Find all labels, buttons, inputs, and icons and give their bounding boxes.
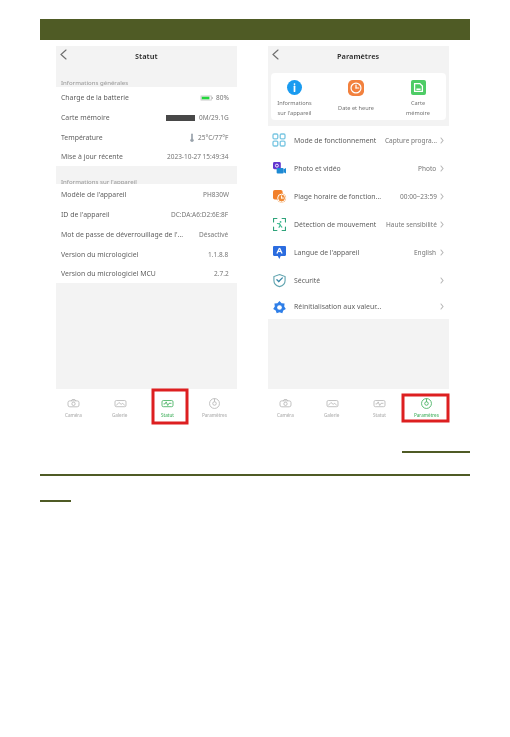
staticText: Informations sur l'appareil xyxy=(61,177,137,185)
button[interactable]: Paramètres xyxy=(405,389,447,423)
button[interactable]: Réinitialisation aux valeur... xyxy=(268,294,449,319)
button[interactable]: Galerie xyxy=(311,389,353,423)
button[interactable]: Version du micrologiciel xyxy=(56,244,237,264)
staticText: English xyxy=(414,248,437,257)
staticText: Détection de mouvement xyxy=(294,220,377,229)
button[interactable]: Modèle de l'appareil xyxy=(56,184,237,204)
staticText: ID de l'appareil xyxy=(61,210,110,219)
button[interactable]: Plage horaire de fonction... xyxy=(268,182,449,210)
button[interactable]: Caméra xyxy=(264,389,306,423)
button[interactable]: Carte mémoire xyxy=(390,73,446,120)
button[interactable]: Mot de passe de déverrouillage de l'... xyxy=(56,224,237,244)
button[interactable]: Statut xyxy=(146,389,188,423)
staticText: Mise à jour récente xyxy=(61,152,123,161)
staticText: Paramètres xyxy=(202,412,227,418)
staticText: Version du micrologiciel MCU xyxy=(61,269,156,278)
staticText: Photo xyxy=(418,164,437,173)
staticText: Langue de l'appareil xyxy=(294,248,360,257)
button[interactable]: Back xyxy=(56,47,70,61)
button[interactable]: Charge de la batterie xyxy=(56,87,237,107)
staticText: 2.7.2 xyxy=(214,269,229,278)
staticText: Caméra xyxy=(277,412,294,418)
button[interactable]: Détection de mouvement xyxy=(268,210,449,238)
staticText: Informations sur l'appareil xyxy=(277,99,312,116)
button[interactable]: ID de l'appareil xyxy=(56,204,237,224)
staticText: Désactivé xyxy=(199,230,229,239)
button[interactable]: Mise à jour récente xyxy=(56,147,237,166)
staticText: Statut xyxy=(373,412,386,418)
button[interactable]: Version du micrologiciel MCU xyxy=(56,264,237,283)
staticText: Galerie xyxy=(324,412,340,418)
staticText: Informations générales xyxy=(61,78,129,86)
staticText: Température xyxy=(61,133,103,142)
staticText: 0M/29.1G xyxy=(199,113,229,122)
staticText: Modèle de l'appareil xyxy=(61,190,127,199)
button[interactable]: Température xyxy=(56,127,237,147)
button[interactable]: Carte mémoire xyxy=(56,107,237,127)
button[interactable]: Mode de fonctionnement xyxy=(268,126,449,154)
staticText: Carte mémoire xyxy=(406,99,430,116)
staticText: 00:00~23:59 xyxy=(400,192,437,201)
button[interactable]: Informations sur l'appareil xyxy=(271,73,322,120)
staticText: 1.1.8.8 xyxy=(208,250,229,259)
staticText: Haute sensibilité xyxy=(386,220,437,229)
button[interactable]: Statut xyxy=(358,389,400,423)
staticText: Mode de fonctionnement xyxy=(294,136,377,145)
staticText: Statut xyxy=(161,412,174,418)
staticText: 25°C/77°F xyxy=(198,133,229,142)
button[interactable]: Back xyxy=(268,47,282,61)
staticText: Mot de passe de déverrouillage de l'... xyxy=(61,230,184,239)
button[interactable]: Sécurité xyxy=(268,266,449,294)
button[interactable]: Langue de l'appareil xyxy=(268,238,449,266)
staticText: Date et heure xyxy=(338,104,374,112)
staticText: Charge de la batterie xyxy=(61,93,129,102)
button[interactable]: Caméra xyxy=(52,389,94,423)
staticText: Carte mémoire xyxy=(61,113,110,122)
staticText: 80% xyxy=(216,93,229,102)
staticText: Galerie xyxy=(112,412,128,418)
staticText: DC:DA:A6:D2:6E:8F xyxy=(171,210,229,219)
staticText: Paramètres xyxy=(414,412,439,418)
button[interactable]: Photo et vidéo xyxy=(268,154,449,182)
staticText: Caméra xyxy=(65,412,82,418)
staticText: Paramètres xyxy=(337,51,380,61)
staticText: Réinitialisation aux valeur... xyxy=(294,302,382,311)
staticText: Plage horaire de fonction... xyxy=(294,192,382,201)
button[interactable]: Date et heure xyxy=(328,73,384,120)
staticText: 2023-10-27 15:49:34 xyxy=(167,152,229,161)
button[interactable]: Paramètres xyxy=(193,389,235,423)
button[interactable]: Galerie xyxy=(99,389,141,423)
staticText: PH830W xyxy=(203,190,229,199)
staticText: Photo et vidéo xyxy=(294,164,341,173)
staticText: Statut xyxy=(135,51,158,61)
staticText: Sécurité xyxy=(294,276,321,285)
staticText: Capture progra... xyxy=(385,136,437,145)
staticText: Version du micrologiciel xyxy=(61,250,139,259)
